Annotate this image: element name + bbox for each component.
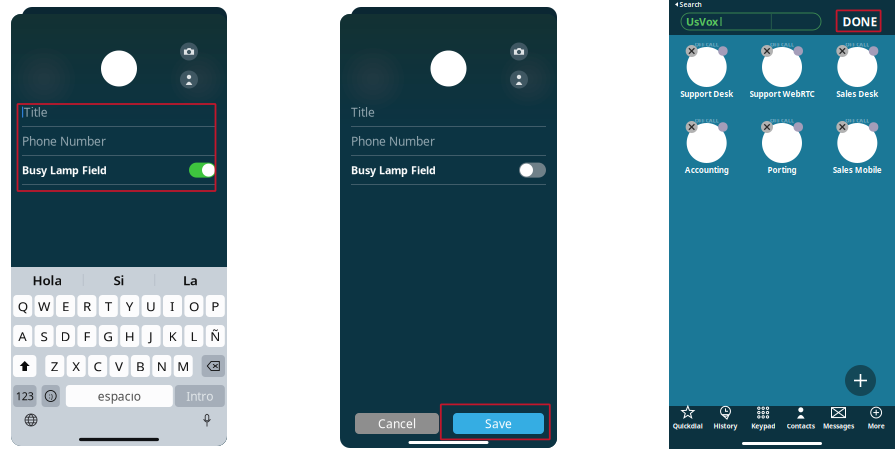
staticText: L xyxy=(190,327,197,345)
button[interactable]: Intro xyxy=(175,385,225,407)
button[interactable]: P xyxy=(206,295,225,317)
button[interactable]: J xyxy=(142,325,161,347)
button[interactable]: W xyxy=(35,295,54,317)
button[interactable]: M xyxy=(174,355,193,377)
button[interactable]: History xyxy=(707,406,744,430)
staticText: V xyxy=(115,357,123,375)
staticText: C xyxy=(94,357,102,375)
button[interactable]: OFF CALL xyxy=(820,41,895,101)
button[interactable]: G xyxy=(99,325,118,347)
button[interactable]: Quickdial xyxy=(669,406,707,430)
button[interactable]: F xyxy=(77,325,96,347)
button[interactable]: E xyxy=(56,295,75,317)
button[interactable]: 123 xyxy=(13,385,37,407)
staticText: X xyxy=(72,357,80,375)
staticText: Contacts xyxy=(787,422,815,430)
button[interactable]: Switch keyboard xyxy=(18,408,44,432)
staticText: D xyxy=(60,327,70,345)
button[interactable]: Emoji xyxy=(42,385,60,407)
staticText: M xyxy=(177,357,189,375)
button[interactable]: H xyxy=(120,325,139,347)
button[interactable]: Si xyxy=(84,269,154,291)
staticText: :) xyxy=(49,392,53,400)
staticText: Phone Number xyxy=(351,133,435,149)
button[interactable]: Backspace xyxy=(202,355,225,377)
staticText: Intro xyxy=(186,388,213,404)
button[interactable]: OFF CALL xyxy=(669,117,744,177)
staticText: OFF CALL xyxy=(695,41,719,48)
staticText: Keypad xyxy=(751,422,775,430)
staticText: Save xyxy=(485,415,512,431)
button[interactable]: La xyxy=(155,269,226,291)
button[interactable]: T xyxy=(99,295,118,317)
staticText: Busy Lamp Field xyxy=(22,163,107,177)
button[interactable]: Keypad xyxy=(744,406,782,430)
staticText: Title xyxy=(351,104,375,120)
button[interactable]: OFF CALL xyxy=(820,117,895,177)
button[interactable]: A xyxy=(13,325,32,347)
staticText: E xyxy=(62,297,69,315)
staticText: B xyxy=(136,357,145,375)
staticText: H xyxy=(125,327,135,345)
staticText: Hola xyxy=(32,271,62,289)
button[interactable]: C xyxy=(88,355,107,377)
button[interactable]: espacio xyxy=(66,385,173,407)
staticText: Sales Mobile xyxy=(833,165,882,175)
button[interactable]: Dictation xyxy=(194,408,220,432)
button[interactable]: Pick contact photo xyxy=(510,70,528,88)
button[interactable]: Hola xyxy=(12,269,83,291)
staticText: Quickdial xyxy=(673,422,703,430)
staticText: J xyxy=(149,327,153,345)
button[interactable]: U xyxy=(142,295,161,317)
button[interactable]: OFF CALL xyxy=(744,117,820,177)
button[interactable]: OFF CALL xyxy=(744,41,820,101)
button[interactable]: Contacts xyxy=(782,406,820,430)
button[interactable]: Busy Lamp Field toggle xyxy=(189,163,216,178)
staticText: O xyxy=(189,297,199,315)
button[interactable]: K xyxy=(163,325,182,347)
staticText: La xyxy=(183,271,198,289)
button[interactable]: I xyxy=(163,295,182,317)
button[interactable]: Pick contact photo xyxy=(180,70,198,88)
button[interactable]: S xyxy=(35,325,54,347)
staticText: Search xyxy=(679,0,701,9)
staticText: Z xyxy=(51,357,59,375)
staticText: G xyxy=(103,327,113,345)
staticText: espacio xyxy=(98,388,141,404)
staticText: Ñ xyxy=(210,327,220,345)
button[interactable]: OFF CALL xyxy=(669,41,744,101)
button[interactable]: V xyxy=(109,355,128,377)
staticText: Porting xyxy=(767,165,796,175)
button[interactable]: DONE xyxy=(838,11,882,32)
button[interactable]: Ñ xyxy=(206,325,225,347)
button[interactable]: B xyxy=(131,355,150,377)
button[interactable]: R xyxy=(77,295,96,317)
button[interactable]: Busy Lamp Field toggle xyxy=(519,163,546,178)
button[interactable]: Shift xyxy=(13,355,36,377)
staticText: OFF CALL xyxy=(695,117,719,124)
button[interactable]: Q xyxy=(13,295,32,317)
staticText: Y xyxy=(126,297,134,315)
button[interactable]: D xyxy=(56,325,75,347)
staticText: Messages xyxy=(823,422,854,430)
button[interactable]: Z xyxy=(45,355,64,377)
button[interactable]: X xyxy=(67,355,86,377)
button[interactable]: Cancel xyxy=(355,413,439,434)
staticText: N xyxy=(157,357,167,375)
button[interactable]: L xyxy=(184,325,203,347)
button[interactable]: Take photo xyxy=(180,42,198,60)
staticText: Support Desk xyxy=(680,89,733,99)
staticText: U xyxy=(146,297,156,315)
button[interactable]: Save xyxy=(453,413,544,434)
staticText: OFF CALL xyxy=(845,117,869,124)
button[interactable]: Messages xyxy=(820,406,857,430)
staticText: P xyxy=(211,297,219,315)
button[interactable]: Add xyxy=(845,365,876,396)
button[interactable]: More xyxy=(857,406,895,430)
button[interactable]: N xyxy=(152,355,171,377)
staticText: UsVox xyxy=(686,14,718,29)
button[interactable]: Take photo xyxy=(510,42,528,60)
button[interactable]: Y xyxy=(120,295,139,317)
button[interactable]: O xyxy=(184,295,203,317)
staticText: Q xyxy=(18,297,28,315)
